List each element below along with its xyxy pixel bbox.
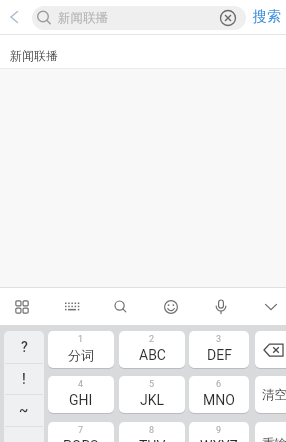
staticText: 分词 [68,347,94,363]
staticText: 2 [149,334,155,345]
button[interactable]: 新闻联播 [0,35,286,68]
button[interactable]: 6 [189,376,249,413]
button[interactable]: 3 [189,331,249,368]
staticText: 3 [216,334,222,345]
staticText: 4 [78,379,84,390]
button[interactable]: 清空 [255,376,286,413]
button[interactable]: ? [4,331,44,363]
button[interactable]: 5 [119,376,185,413]
staticText: 6 [216,379,222,390]
button[interactable]: 9 [189,422,249,442]
staticText: 清空 [262,387,286,403]
staticText: ABC [139,347,166,363]
button[interactable]: 新闻联播 [32,6,246,30]
staticText: 5 [149,379,155,390]
button[interactable]: 4 [48,376,114,413]
button[interactable]: ~ [4,394,44,426]
button[interactable] [255,331,286,368]
button[interactable]: 2 [119,331,185,368]
staticText: 9 [216,425,222,436]
staticText: 8 [149,425,155,436]
staticText: 新闻联播 [58,10,108,26]
staticText: GHI [69,392,93,408]
button[interactable]: 8 [119,422,185,442]
staticText: 新闻联播 [10,48,58,63]
button[interactable]: ! [4,363,44,395]
button[interactable]: 7 [48,422,114,442]
button[interactable]: 重输 [255,422,286,442]
button[interactable] [149,288,193,325]
button[interactable] [199,288,243,325]
staticText: JKL [140,392,165,408]
button[interactable] [99,288,143,325]
button[interactable] [0,288,44,325]
staticText: 1 [78,334,84,345]
staticText: 7 [78,425,84,436]
staticText: ! [22,371,26,387]
staticText: DEF [207,347,232,363]
staticText: 搜索 [253,8,281,26]
staticText: WXYZ [200,438,238,442]
staticText: MNO [203,392,235,408]
staticText: ? [21,339,28,355]
button[interactable]: 搜索 [248,0,286,34]
staticText: PQRS [63,438,99,442]
staticText: TUV [139,438,166,442]
button[interactable]: 1 [48,331,114,368]
staticText: ~ [19,402,29,418]
button[interactable] [220,10,236,26]
button[interactable] [2,5,26,29]
staticText: 重输 [262,436,286,442]
button[interactable] [249,288,286,325]
button[interactable] [50,288,94,325]
